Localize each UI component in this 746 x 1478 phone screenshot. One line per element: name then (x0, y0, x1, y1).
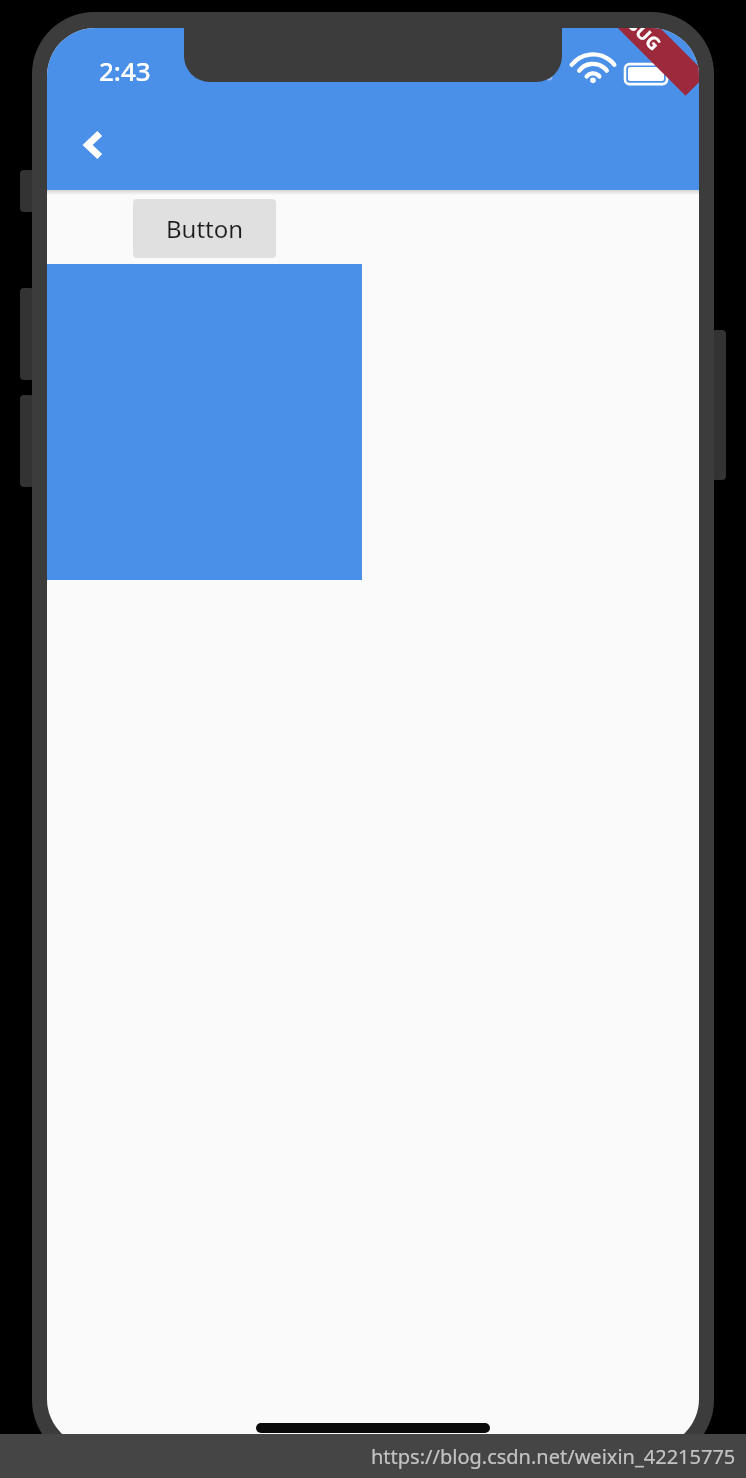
staticText: Button (166, 212, 244, 245)
staticText: https://blog.csdn.net/weixin_42215775 (371, 1443, 736, 1470)
staticText: 2:43 (99, 53, 151, 88)
button[interactable]: Back (65, 116, 123, 174)
staticText: DEBUG (605, 28, 666, 56)
button[interactable]: Button (133, 199, 276, 258)
